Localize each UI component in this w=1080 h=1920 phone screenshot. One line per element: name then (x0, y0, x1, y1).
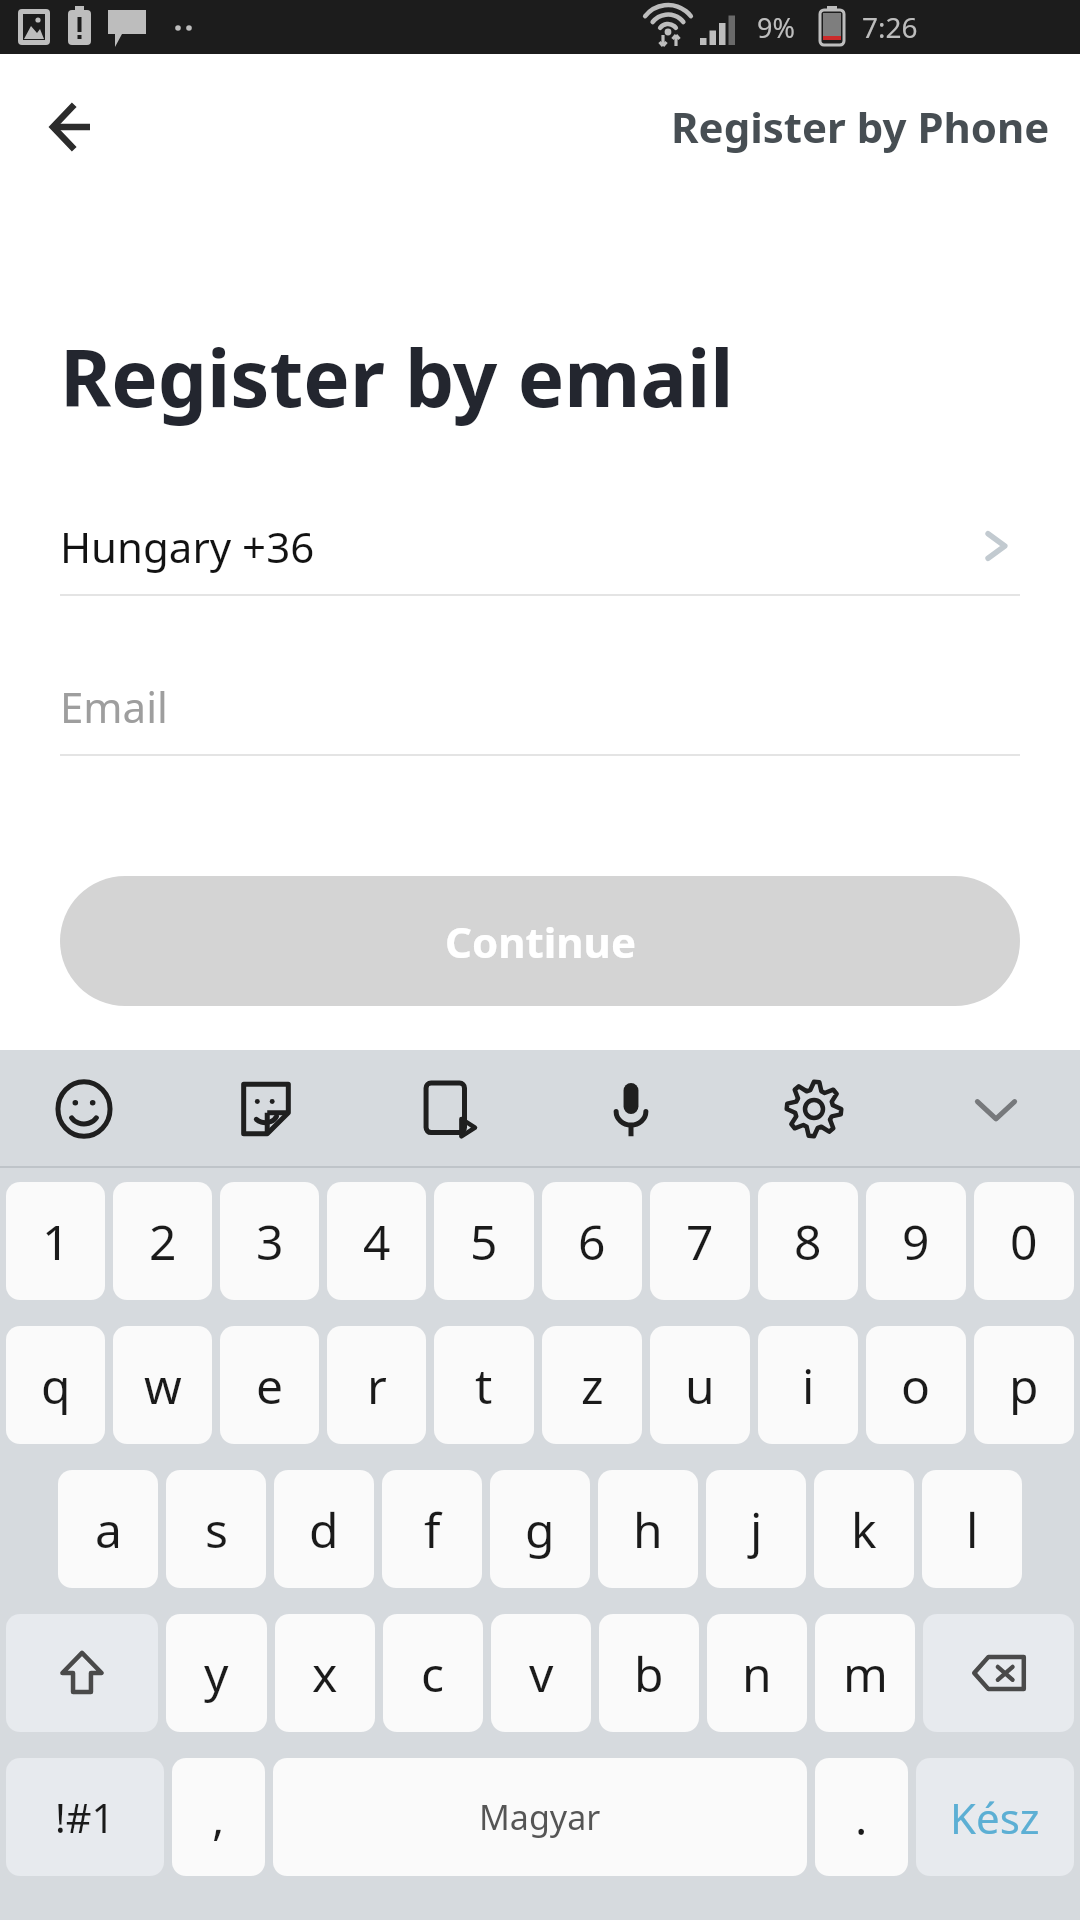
button[interactable]: Stickers (218, 1061, 314, 1157)
staticText: 1 (42, 1209, 70, 1274)
staticText: a (95, 1497, 122, 1562)
staticText: f (424, 1497, 441, 1562)
staticText: Register by Phone (671, 98, 1050, 155)
button[interactable]: j (706, 1470, 806, 1588)
button[interactable]: Email (0, 658, 1080, 756)
button[interactable]: 4 (327, 1182, 426, 1300)
button[interactable]: e (220, 1326, 319, 1444)
button[interactable]: l (922, 1470, 1022, 1588)
staticText: 6 (578, 1209, 606, 1274)
staticText: 3 (256, 1209, 284, 1274)
button[interactable]: 8 (758, 1182, 858, 1300)
staticText: x (312, 1641, 338, 1706)
staticText: r (367, 1353, 387, 1418)
staticText: 5 (470, 1209, 498, 1274)
button[interactable]: s (166, 1470, 266, 1588)
button[interactable]: p (974, 1326, 1074, 1444)
staticText: Hungary +36 (60, 518, 315, 575)
staticText: l (966, 1497, 979, 1562)
staticText: y (204, 1641, 229, 1706)
button[interactable]: Hide keyboard (948, 1061, 1044, 1157)
staticText: Continue (445, 913, 636, 970)
button[interactable]: 7 (650, 1182, 750, 1300)
staticText: 8 (794, 1209, 822, 1274)
button[interactable]: , (172, 1758, 265, 1876)
button[interactable]: Keyboard settings (766, 1061, 862, 1157)
staticText: Kész (950, 1789, 1040, 1846)
staticText: . (855, 1786, 868, 1849)
staticText: p (1009, 1353, 1039, 1418)
button[interactable]: Shift (6, 1614, 158, 1732)
button[interactable]: Back (28, 85, 112, 169)
staticText: g (525, 1497, 555, 1562)
staticText: 7:26 (862, 8, 918, 46)
staticText: 9% (757, 9, 795, 46)
button[interactable]: d (274, 1470, 374, 1588)
staticText: 9 (902, 1209, 930, 1274)
staticText: v (529, 1641, 554, 1706)
button[interactable]: q (6, 1326, 105, 1444)
button[interactable]: x (275, 1614, 375, 1732)
button[interactable]: Magyar (273, 1758, 807, 1876)
button[interactable]: Register by Phone (671, 98, 1050, 155)
staticText: d (309, 1497, 339, 1562)
button[interactable]: 0 (974, 1182, 1074, 1300)
staticText: 4 (363, 1209, 391, 1274)
button[interactable]: r (327, 1326, 426, 1444)
staticText: e (256, 1353, 284, 1418)
button[interactable]: y (166, 1614, 267, 1732)
staticText: 7 (686, 1209, 714, 1274)
staticText: !#1 (55, 1790, 115, 1844)
button[interactable]: t (434, 1326, 534, 1444)
button[interactable]: 2 (113, 1182, 212, 1300)
staticText: Magyar (479, 1794, 601, 1840)
staticText: 0 (1010, 1209, 1038, 1274)
button[interactable]: 6 (542, 1182, 642, 1300)
button[interactable]: !#1 (6, 1758, 164, 1876)
button[interactable]: z (542, 1326, 642, 1444)
button[interactable]: o (866, 1326, 966, 1444)
button[interactable]: i (758, 1326, 858, 1444)
button[interactable]: f (382, 1470, 482, 1588)
staticText: c (421, 1641, 445, 1706)
button[interactable]: m (815, 1614, 915, 1732)
staticText: z (581, 1353, 604, 1418)
button[interactable]: Hungary +36 (0, 498, 1080, 596)
staticText: o (901, 1353, 931, 1418)
button[interactable]: n (707, 1614, 807, 1732)
button[interactable]: Voice input (583, 1061, 679, 1157)
button[interactable]: w (113, 1326, 212, 1444)
staticText: s (205, 1497, 228, 1562)
staticText: w (144, 1353, 182, 1418)
button[interactable]: Kész (916, 1758, 1074, 1876)
staticText: b (634, 1641, 664, 1706)
staticText: k (851, 1497, 877, 1562)
staticText: i (802, 1353, 815, 1418)
button[interactable]: 5 (434, 1182, 534, 1300)
button[interactable]: u (650, 1326, 750, 1444)
button[interactable]: 1 (6, 1182, 105, 1300)
staticText: , (212, 1786, 225, 1849)
button[interactable]: g (490, 1470, 590, 1588)
button[interactable]: Emoji (36, 1061, 132, 1157)
staticText: u (685, 1353, 715, 1418)
button[interactable]: Continue (60, 876, 1020, 1006)
button[interactable]: Backspace (923, 1614, 1074, 1732)
staticText: Email (60, 678, 168, 735)
staticText: t (475, 1353, 493, 1418)
staticText: j (750, 1497, 763, 1562)
staticText: m (843, 1641, 888, 1706)
button[interactable]: v (491, 1614, 591, 1732)
staticText: 2 (149, 1209, 177, 1274)
button[interactable]: . (815, 1758, 908, 1876)
button[interactable]: 3 (220, 1182, 319, 1300)
staticText: h (633, 1497, 663, 1562)
button[interactable]: c (383, 1614, 483, 1732)
button[interactable]: b (599, 1614, 699, 1732)
button[interactable]: h (598, 1470, 698, 1588)
button[interactable]: a (58, 1470, 158, 1588)
button[interactable]: GIF (401, 1061, 497, 1157)
staticText: q (41, 1353, 71, 1418)
button[interactable]: k (814, 1470, 914, 1588)
button[interactable]: 9 (866, 1182, 966, 1300)
